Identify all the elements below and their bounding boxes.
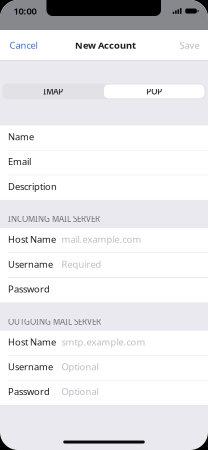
staticText: Save	[179, 39, 199, 51]
staticText: Email	[8, 155, 31, 168]
button[interactable]: Description	[0, 175, 208, 200]
staticText: 10:00	[13, 5, 36, 17]
button[interactable]: Email	[0, 150, 208, 175]
button[interactable]: IMAP	[2, 83, 104, 99]
button[interactable]: Save	[171, 30, 208, 60]
staticText: Description	[8, 180, 57, 192]
staticText: Host Name	[8, 336, 56, 348]
staticText: INCOMING MAIL SERVER	[8, 214, 100, 224]
staticText: POP	[146, 86, 162, 97]
staticText: Optional	[61, 360, 98, 373]
button[interactable]: Host Name	[0, 331, 208, 355]
staticText: Host Name	[8, 233, 56, 245]
button[interactable]: Host Name	[0, 228, 208, 252]
staticText: smtp.example.com	[61, 336, 145, 348]
staticText: Optional	[61, 385, 98, 398]
staticText: Username	[8, 360, 53, 373]
staticText: Cancel	[9, 39, 37, 51]
button[interactable]: Username	[0, 356, 208, 380]
button[interactable]: Password	[0, 380, 208, 405]
staticText: Password	[8, 283, 50, 295]
staticText: mail.example.com	[61, 233, 141, 245]
staticText: IMAP	[43, 86, 63, 97]
button[interactable]: Password	[0, 278, 208, 302]
button[interactable]: Name	[0, 126, 208, 150]
staticText: Password	[8, 385, 50, 398]
staticText: New Account	[75, 39, 136, 51]
staticText: Required	[61, 258, 101, 270]
button[interactable]: Cancel	[0, 30, 45, 60]
staticText: Name	[8, 130, 34, 143]
staticText: Username	[8, 258, 53, 270]
staticText: OUTGOING MAIL SERVER	[8, 316, 101, 327]
button[interactable]: POP	[104, 83, 206, 99]
button[interactable]: Username	[0, 253, 208, 277]
